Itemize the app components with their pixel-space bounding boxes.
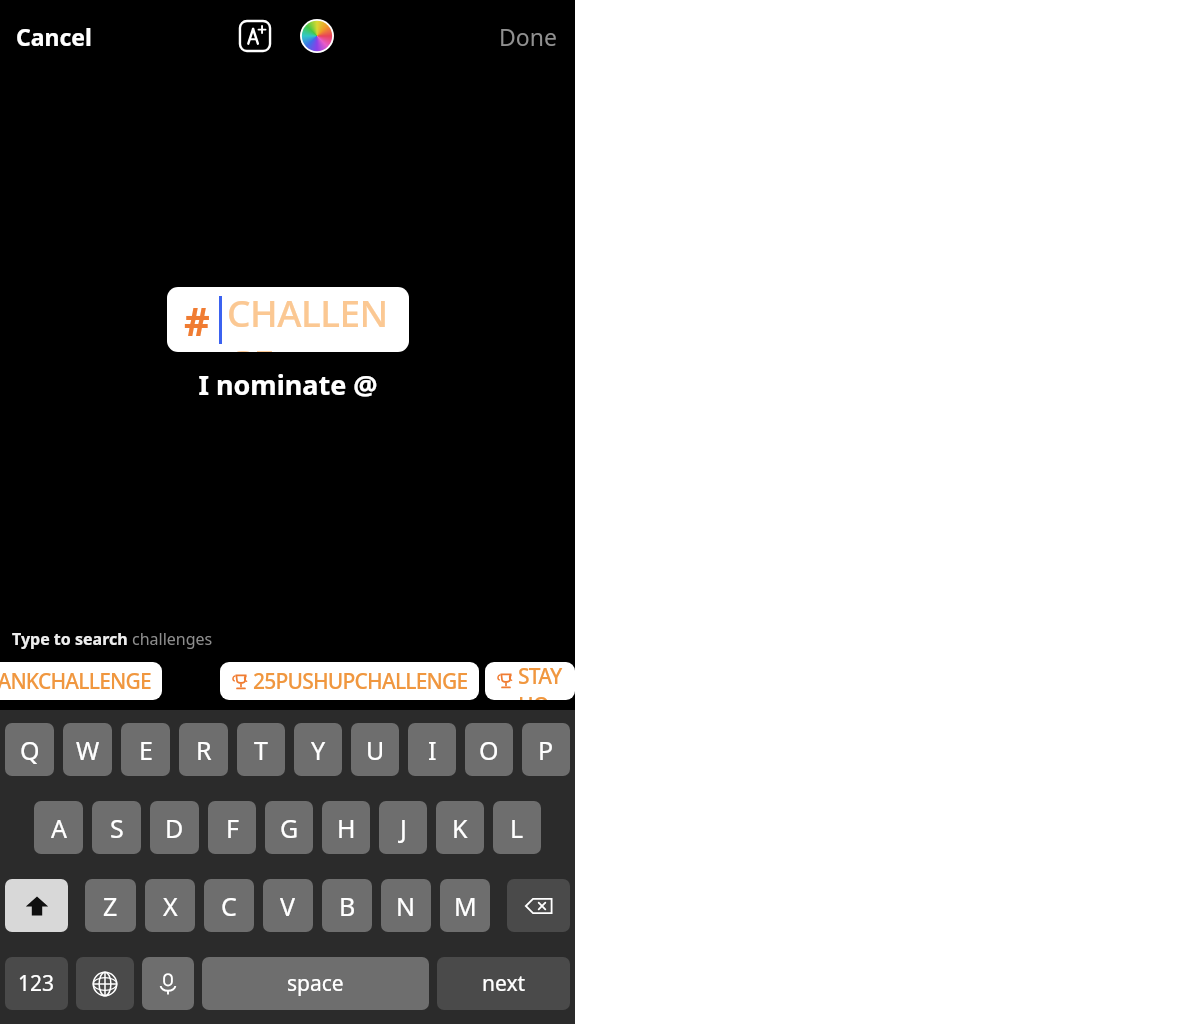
button[interactable]: Z — [85, 879, 136, 932]
staticText: Q — [20, 733, 40, 767]
button[interactable]: P — [522, 723, 570, 776]
staticText: V — [280, 889, 296, 923]
button[interactable]: M — [440, 879, 490, 932]
button[interactable]: # — [167, 287, 409, 352]
staticText: U — [366, 733, 385, 767]
staticText: B — [339, 889, 356, 923]
button[interactable]: Voice input — [142, 957, 194, 1010]
staticText: R — [196, 733, 212, 767]
staticText: M — [454, 889, 477, 923]
staticText: W — [76, 733, 100, 767]
button[interactable]: Shift — [5, 879, 68, 932]
button[interactable]: 25PUSHUPCHALLENGE — [220, 662, 479, 700]
button[interactable]: A — [34, 801, 83, 854]
button[interactable]: E — [121, 723, 170, 776]
button[interactable]: L — [493, 801, 541, 854]
button[interactable]: T — [237, 723, 285, 776]
button[interactable]: Color picker — [295, 14, 339, 58]
button[interactable]: J — [379, 801, 427, 854]
staticText: X — [163, 889, 178, 923]
staticText: I — [428, 733, 437, 767]
staticText: G — [280, 811, 299, 845]
staticText: N — [396, 889, 416, 923]
staticText: # — [184, 293, 210, 347]
button[interactable]: C — [204, 879, 254, 932]
staticText: P — [538, 733, 554, 767]
button[interactable]: Q — [5, 723, 54, 776]
button[interactable]: Backspace — [507, 879, 570, 932]
button[interactable]: Text style — [233, 14, 277, 58]
staticText: Z — [103, 889, 118, 923]
button[interactable]: Y — [294, 723, 342, 776]
staticText: J — [400, 811, 407, 845]
staticText: CHALLENGE — [227, 287, 409, 352]
button[interactable]: D — [150, 801, 199, 854]
staticText: F — [226, 811, 239, 845]
staticText: Type to search — [12, 628, 132, 650]
staticText: K — [452, 811, 468, 845]
button[interactable]: Change keyboard language — [76, 957, 134, 1010]
staticText: E — [139, 733, 153, 767]
staticText: STAYHOMECHALLENGE — [518, 662, 564, 700]
staticText: Cancel — [16, 21, 92, 52]
staticText: A — [51, 811, 67, 845]
button[interactable]: Done — [491, 15, 565, 58]
button[interactable]: K — [436, 801, 484, 854]
button[interactable]: Cancel — [8, 15, 100, 58]
button[interactable]: S — [92, 801, 141, 854]
staticText: 123 — [18, 969, 55, 998]
staticText: Y — [311, 733, 326, 767]
staticText: T — [254, 733, 268, 767]
staticText: challenges — [132, 628, 213, 650]
staticText: 25PUSHUPCHALLENGE — [253, 667, 468, 696]
staticText: I nominate @ — [198, 366, 378, 403]
button[interactable]: N — [381, 879, 431, 932]
button[interactable]: F — [208, 801, 256, 854]
button[interactable]: G — [265, 801, 313, 854]
staticText: H — [337, 811, 356, 845]
button[interactable]: PLANKCHALLENGE — [0, 662, 162, 700]
button[interactable]: space — [202, 957, 429, 1010]
staticText: Done — [499, 21, 557, 52]
button[interactable]: O — [465, 723, 513, 776]
button[interactable]: STAYHOMECHALLENGE — [485, 662, 575, 700]
staticText: S — [110, 811, 124, 845]
staticText: O — [479, 733, 499, 767]
staticText: C — [221, 889, 237, 923]
button[interactable]: R — [179, 723, 228, 776]
button[interactable]: V — [263, 879, 313, 932]
staticText: next — [482, 969, 526, 998]
staticText: space — [287, 969, 344, 998]
staticText: PLANKCHALLENGE — [0, 667, 151, 696]
button[interactable]: U — [351, 723, 399, 776]
button[interactable]: X — [145, 879, 195, 932]
button[interactable]: I — [408, 723, 456, 776]
staticText: L — [510, 811, 524, 845]
button[interactable]: 123 — [5, 957, 68, 1010]
staticText: D — [165, 811, 184, 845]
button[interactable]: W — [63, 723, 112, 776]
button[interactable]: B — [322, 879, 372, 932]
button[interactable]: next — [437, 957, 570, 1010]
button[interactable]: H — [322, 801, 370, 854]
